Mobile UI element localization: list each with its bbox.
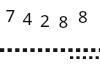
button[interactable]: Axis values 7 4 2 8 8 [0, 0, 100, 64]
